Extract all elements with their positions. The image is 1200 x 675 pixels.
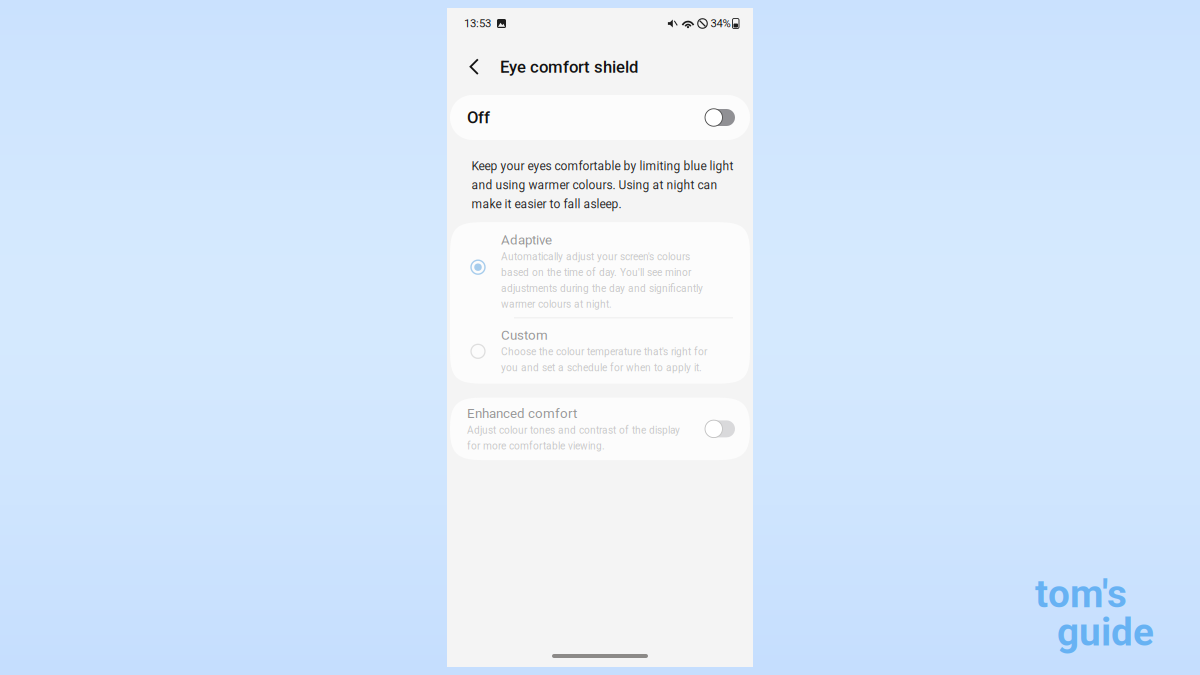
- staticText: tom's: [1035, 571, 1127, 617]
- staticText: Automatically adjust your screen's colou…: [501, 251, 703, 310]
- button[interactable]: Off: [450, 95, 750, 140]
- button[interactable]: Custom: [450, 318, 750, 384]
- staticText: Keep your eyes comfortable by limiting b…: [471, 159, 733, 211]
- staticText: Choose the colour temperature that's rig…: [501, 346, 707, 374]
- button[interactable]: Enhanced comfort: [450, 398, 750, 460]
- staticText: 34%: [710, 17, 730, 30]
- staticText: Custom: [501, 327, 548, 343]
- staticText: Adaptive: [501, 232, 552, 248]
- staticText: Eye comfort shield: [500, 57, 638, 77]
- button[interactable]: Adaptive: [450, 222, 750, 317]
- staticText: Off: [467, 108, 490, 127]
- staticText: guide: [1057, 610, 1154, 655]
- staticText: Enhanced comfort: [467, 406, 577, 421]
- staticText: 13:53: [464, 17, 491, 30]
- button[interactable]: Back: [458, 47, 490, 87]
- staticText: Adjust colour tones and contrast of the …: [467, 424, 680, 452]
